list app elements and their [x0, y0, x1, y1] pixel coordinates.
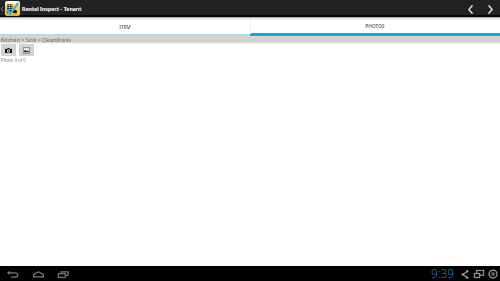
staticText: Photo 0 of 0 [1, 57, 26, 63]
staticText: ITEM [119, 24, 131, 31]
button[interactable]: Take photo [1, 44, 16, 56]
button[interactable]: Screenshot [473, 269, 484, 278]
staticText: PHOTOS [365, 23, 385, 30]
staticText: Rental Inspect - Tenant [22, 5, 82, 12]
button[interactable]: Home [32, 268, 44, 280]
staticText: 9:39 [431, 265, 455, 280]
button[interactable]: App icon [5, 1, 20, 16]
button[interactable]: Previous [465, 2, 475, 16]
button[interactable]: Recent apps [57, 268, 69, 280]
button[interactable]: Close [488, 268, 498, 279]
button[interactable]: Next [485, 2, 495, 16]
button[interactable]: PHOTOS [250, 20, 500, 36]
button[interactable]: Back [6, 267, 19, 280]
button[interactable]: Share [460, 269, 469, 279]
staticText: Kitchen > Sink > Cleanliness [1, 36, 71, 43]
button[interactable]: ITEM [0, 20, 250, 36]
button[interactable]: Pick photo from gallery [19, 44, 34, 56]
